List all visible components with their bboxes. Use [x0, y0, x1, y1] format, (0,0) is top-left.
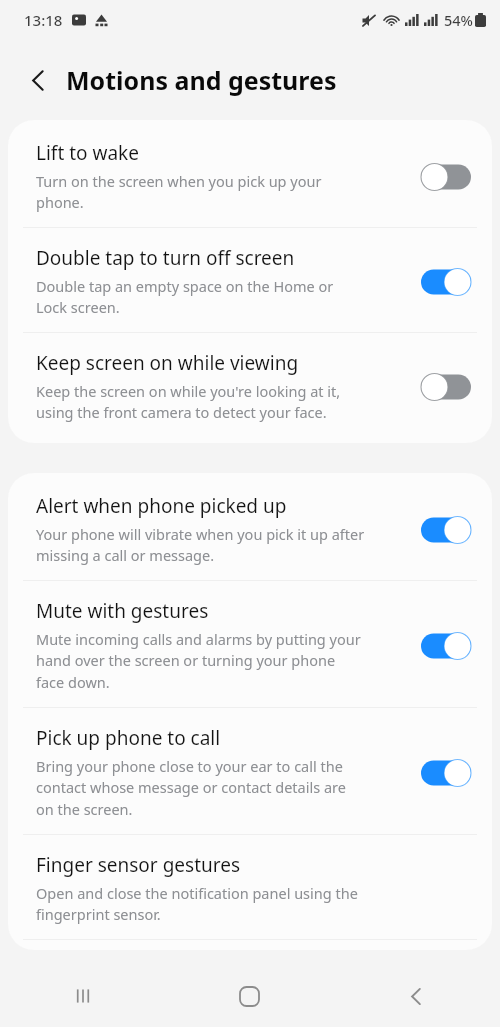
button[interactable]: Switch on — [420, 514, 472, 546]
button[interactable]: Mute with gestures — [8, 581, 492, 707]
staticText: Double tap to turn off screen — [36, 245, 295, 271]
staticText: Open and close the notification panel us… — [36, 883, 358, 925]
staticText: Pick up phone to call — [36, 725, 221, 751]
staticText: 13:18 — [24, 10, 63, 30]
staticText: Finger sensor gestures — [36, 852, 241, 878]
staticText: Motions and gestures — [66, 63, 337, 97]
staticText: Mute incoming calls and alarms by puttin… — [36, 629, 361, 693]
button[interactable]: Switch off — [420, 161, 472, 193]
button[interactable]: Finger sensor gestures — [8, 835, 492, 939]
staticText: Keep the screen on while you're looking … — [36, 381, 341, 423]
button[interactable]: Keep screen on while viewing — [8, 333, 492, 443]
button[interactable]: Home — [166, 965, 333, 1027]
button[interactable]: Lift to wake — [8, 120, 492, 227]
staticText: Bring your phone close to your ear to ca… — [36, 756, 346, 820]
button[interactable]: Pick up phone to call — [8, 708, 492, 834]
button[interactable]: Switch on — [420, 630, 472, 662]
button[interactable]: Recent apps — [0, 965, 166, 1027]
button[interactable]: Alert when phone picked up — [8, 473, 492, 580]
staticText: Double tap an empty space on the Home or… — [36, 276, 334, 318]
staticText: Mute with gestures — [36, 598, 209, 624]
button[interactable]: Switch on — [420, 757, 472, 789]
staticText: Lift to wake — [36, 140, 139, 166]
button[interactable]: Double tap to turn off screen — [8, 228, 492, 332]
button[interactable]: Back — [333, 965, 500, 1027]
staticText: Keep screen on while viewing — [36, 350, 299, 376]
staticText: Turn on the screen when you pick up your… — [36, 171, 322, 213]
button[interactable]: Navigate up — [16, 58, 60, 102]
staticText: 54% — [444, 10, 473, 30]
button[interactable]: Switch off — [420, 371, 472, 403]
staticText: Your phone will vibrate when you pick it… — [36, 524, 365, 566]
staticText: Alert when phone picked up — [36, 493, 287, 519]
button[interactable]: Switch on — [420, 266, 472, 298]
